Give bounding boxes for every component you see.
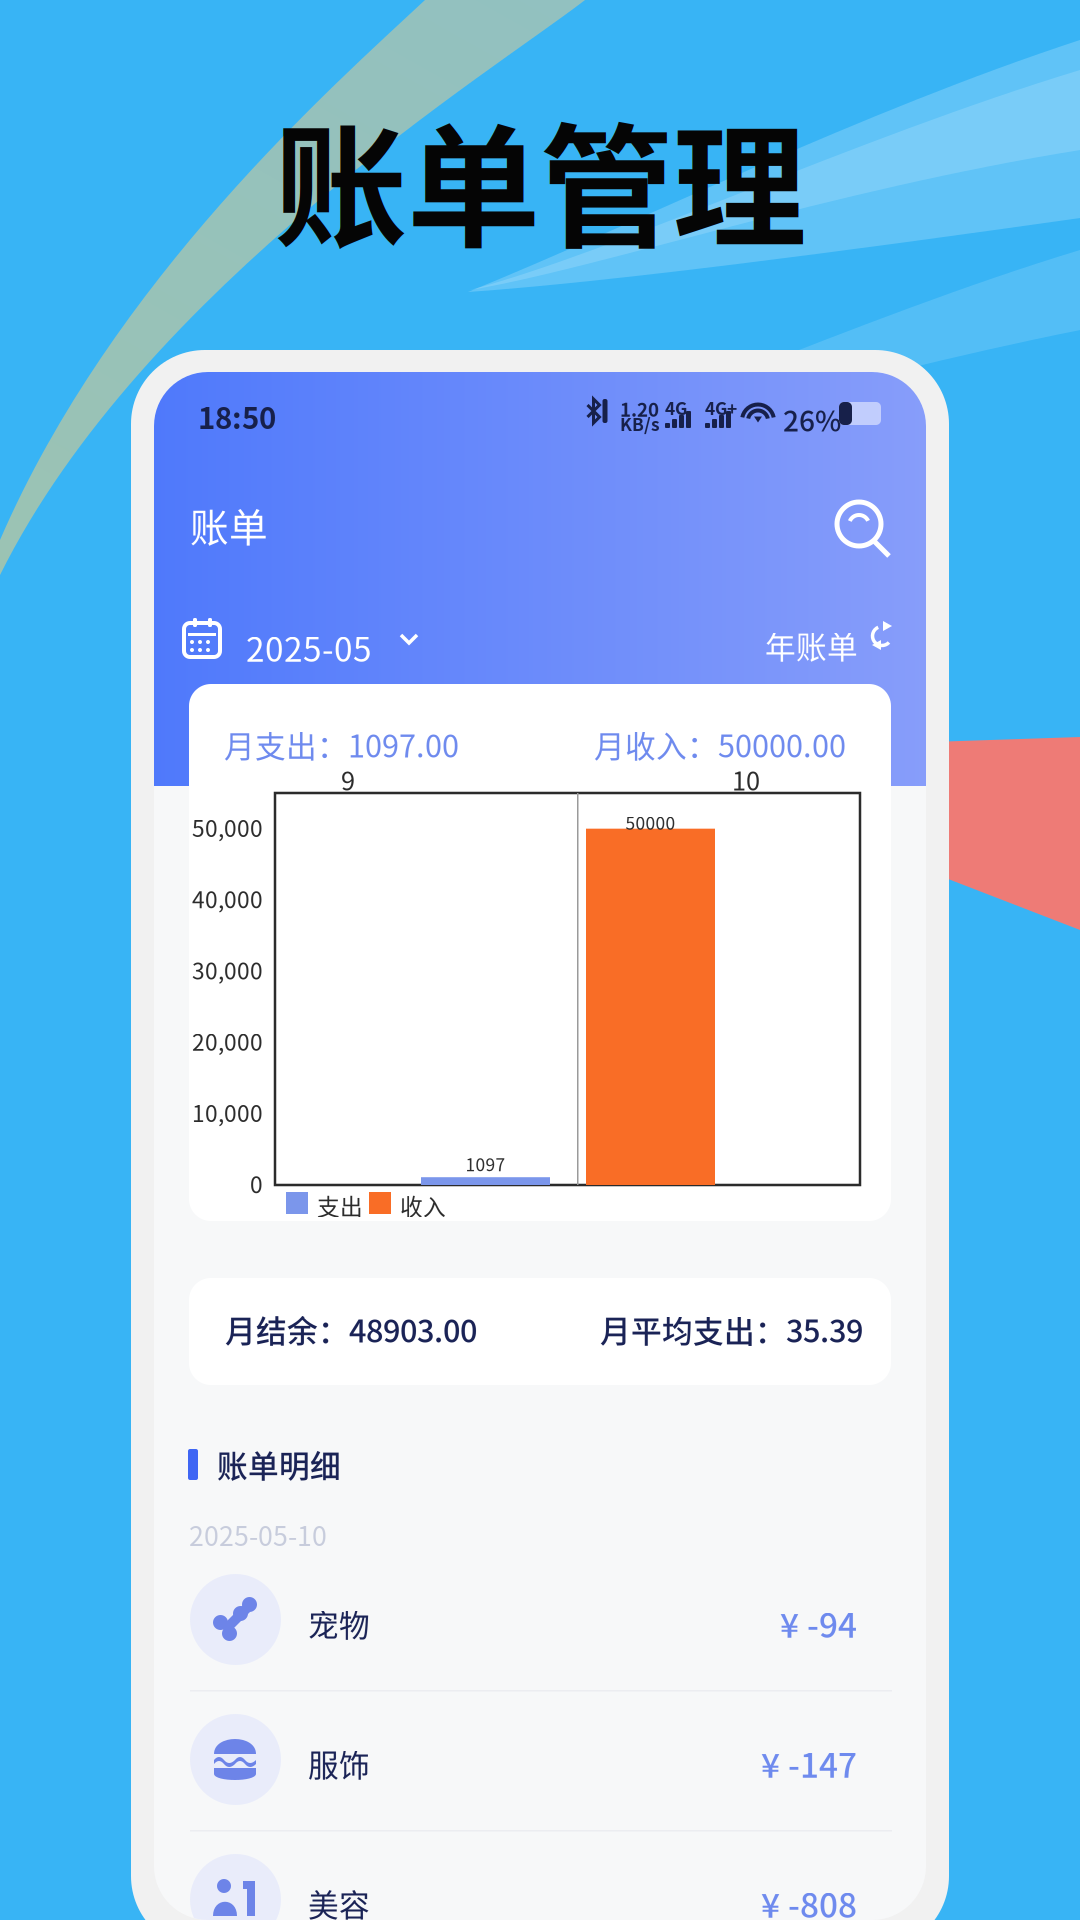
staticText: 2025-05	[246, 623, 372, 671]
staticText: 50000	[625, 810, 675, 835]
staticText: 月收入：50000.00	[594, 722, 846, 766]
staticText: 4G+	[705, 395, 737, 420]
staticText: 宠物	[308, 1601, 370, 1645]
button[interactable]: 年账单	[765, 612, 905, 668]
staticText: 服饰	[308, 1741, 370, 1785]
staticText: ¥ -808	[761, 1879, 857, 1920]
button[interactable]: 美容	[154, 1840, 926, 1920]
staticText: 月支出：1097.00	[224, 722, 459, 766]
staticText: ¥ -94	[780, 1599, 857, 1647]
staticText: 美容	[308, 1881, 370, 1920]
button[interactable]: 搜索	[835, 500, 897, 562]
staticText: 18:50	[198, 395, 276, 437]
staticText: 月结余：48903.00	[225, 1307, 477, 1351]
staticText: 2025-05-10	[189, 1515, 327, 1554]
staticText: 30,000	[192, 953, 263, 986]
button[interactable]: 宠物	[154, 1560, 926, 1690]
staticText: 账单明细	[217, 1442, 341, 1486]
staticText: 月平均支出：35.39	[600, 1307, 863, 1351]
staticText: 支出	[317, 1189, 363, 1222]
staticText: 20,000	[192, 1024, 263, 1057]
staticText: 40,000	[192, 882, 263, 915]
staticText: 10,000	[192, 1096, 263, 1128]
staticText: ¥ -147	[761, 1739, 857, 1787]
staticText: 账单管理	[274, 81, 806, 275]
staticText: 收入	[400, 1189, 446, 1222]
staticText: 9	[341, 761, 355, 798]
staticText: 1097	[465, 1151, 505, 1176]
staticText: 26%	[783, 399, 841, 439]
staticText: 50,000	[192, 811, 263, 843]
button[interactable]: 服饰	[154, 1700, 926, 1830]
staticText: 10	[732, 761, 760, 798]
button[interactable]: 2025-05	[182, 612, 442, 668]
staticText: 年账单	[765, 623, 858, 667]
staticText: 账单	[190, 497, 268, 553]
staticText: KB/s	[620, 411, 660, 436]
staticText: 1.20	[620, 395, 659, 422]
staticText: 4G	[665, 395, 687, 420]
staticText: 0	[250, 1167, 263, 1200]
